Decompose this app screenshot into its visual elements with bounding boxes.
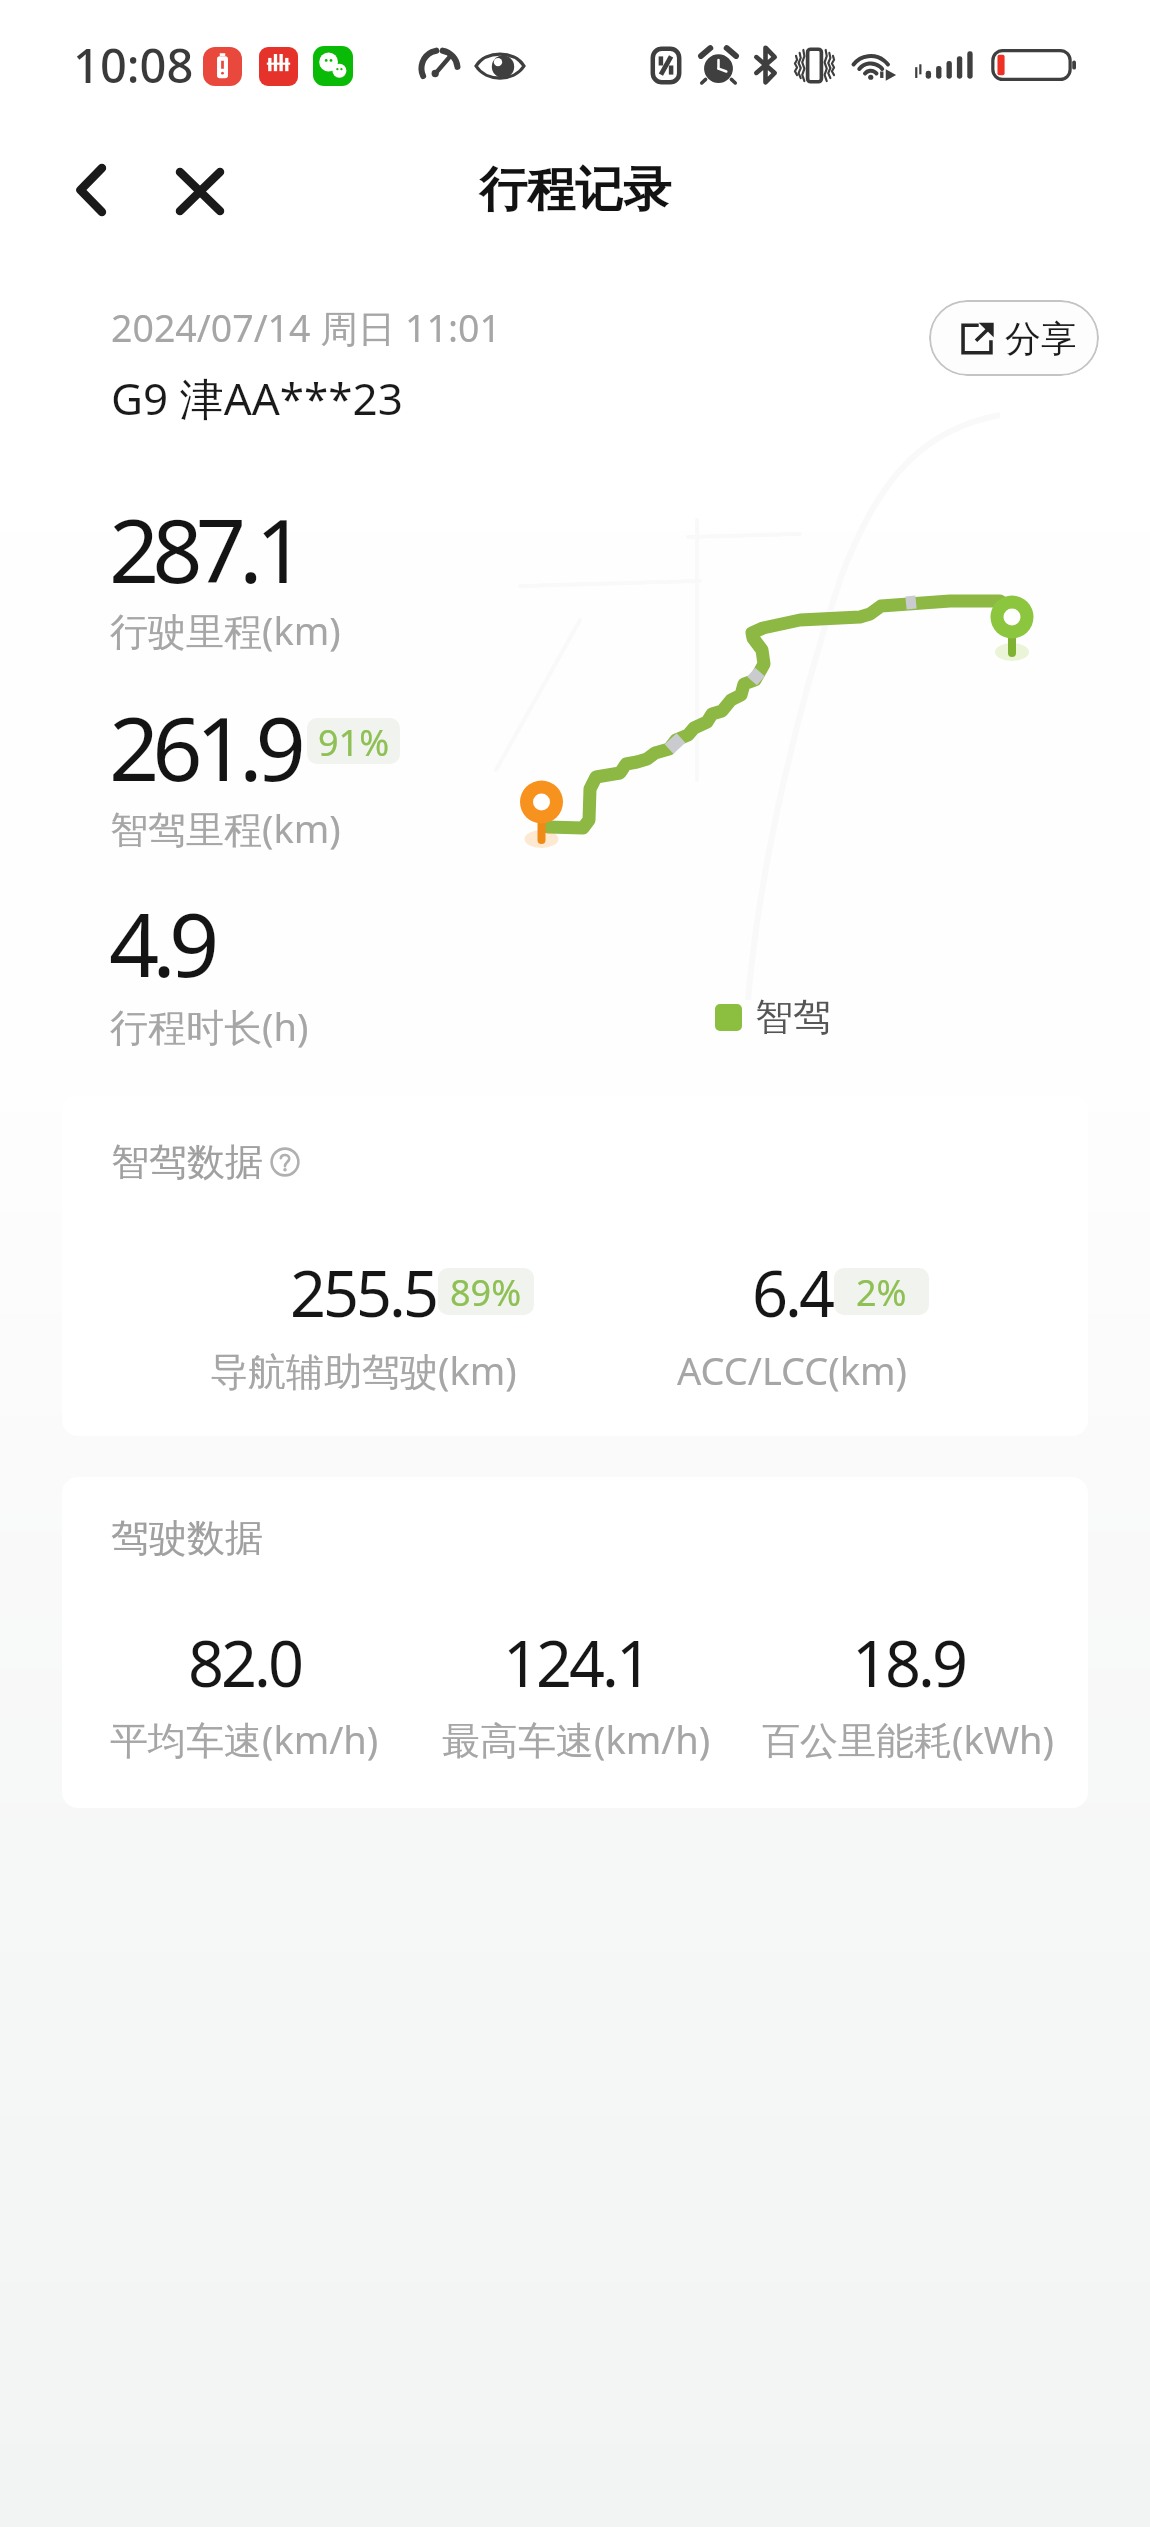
- staticText: 平均车速(km/h): [110, 1713, 379, 1765]
- staticText: 智驾数据: [111, 1138, 263, 1186]
- staticText: 287.1: [109, 489, 299, 609]
- staticText: 91%: [318, 718, 390, 764]
- staticText: 百公里能耗(kWh): [762, 1713, 1054, 1765]
- staticText: 智驾: [755, 993, 831, 1041]
- staticText: 82.0: [188, 1620, 301, 1706]
- staticText: 行程时长(h): [110, 1000, 309, 1052]
- staticText: 4.9: [109, 883, 213, 1003]
- staticText: 2%: [856, 1268, 907, 1315]
- staticText: 行程记录: [479, 160, 671, 220]
- button[interactable]: 分享: [929, 300, 1099, 376]
- staticText: 6.4: [752, 1250, 832, 1336]
- staticText: 最高车速(km/h): [442, 1713, 711, 1765]
- staticText: ACC/LCC(km): [677, 1344, 907, 1396]
- staticText: 分享: [1005, 316, 1075, 361]
- staticText: 驾驶数据: [111, 1514, 263, 1562]
- staticText: 89%: [450, 1268, 522, 1315]
- button[interactable]: Back: [49, 148, 133, 232]
- button[interactable]: About smart-driving data: [270, 1147, 300, 1177]
- staticText: 261.9: [109, 687, 299, 807]
- staticText: 2024/07/14 周日 11:01: [111, 302, 501, 353]
- staticText: 导航辅助驾驶(km): [210, 1344, 517, 1396]
- staticText: G9 津AA***23: [111, 368, 403, 428]
- staticText: 行驶里程(km): [110, 604, 341, 656]
- staticText: 18.9: [852, 1620, 965, 1706]
- button[interactable]: Close: [156, 147, 244, 235]
- staticText: 255.5: [290, 1250, 437, 1336]
- staticText: 智驾里程(km): [110, 802, 341, 854]
- staticText: 10:08: [73, 33, 194, 97]
- staticText: 124.1: [503, 1620, 650, 1706]
